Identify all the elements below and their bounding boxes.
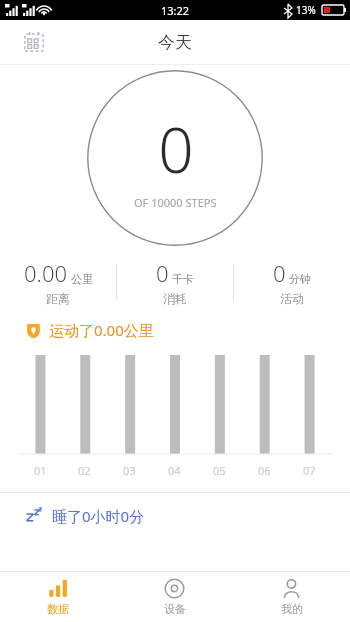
staticText: 04 (168, 463, 181, 478)
staticText: 0 (156, 258, 169, 288)
staticText: 今天 (158, 32, 192, 53)
staticText: 0.00 (24, 258, 68, 288)
staticText: 13% (296, 3, 316, 17)
staticText: 13:22 (161, 3, 190, 18)
button[interactable]: 睡了0小时0分 (0, 493, 350, 539)
button[interactable]: 0 (234, 254, 350, 310)
button[interactable]: 运动了0.00公里 (0, 313, 350, 347)
staticText: 我的 (281, 602, 303, 616)
staticText: 运动了0.00公里 (49, 320, 154, 340)
button[interactable]: 0.00 (0, 254, 116, 310)
staticText: 睡了0小时0分 (52, 506, 145, 526)
staticText: 消耗 (163, 291, 187, 306)
button[interactable]: 0 (117, 254, 233, 310)
button[interactable]: 我的 (233, 572, 350, 622)
button[interactable]: 数据 (0, 572, 116, 622)
staticText: OF 10000 STEPS (134, 195, 217, 210)
staticText: 数据 (47, 602, 69, 616)
staticText: 距离 (46, 291, 70, 306)
staticText: 公里 (71, 272, 93, 286)
staticText: 0 (158, 107, 194, 191)
staticText: 0 (273, 258, 286, 288)
staticText: 05 (213, 463, 226, 478)
staticText: 03 (123, 463, 136, 478)
button[interactable]: 设备 (116, 572, 233, 622)
staticText: 千卡 (172, 272, 194, 286)
staticText: 02 (78, 463, 91, 478)
staticText: 06 (258, 463, 271, 478)
staticText: 01 (34, 463, 47, 478)
staticText: 分钟 (289, 272, 311, 286)
staticText: 活动 (280, 291, 304, 306)
button[interactable]: Calendar (14, 22, 54, 62)
staticText: 设备 (164, 602, 186, 616)
staticText: 07 (303, 463, 316, 478)
button[interactable]: 0 (87, 70, 263, 246)
